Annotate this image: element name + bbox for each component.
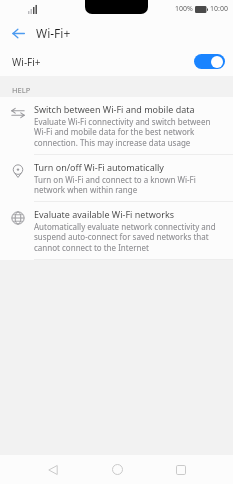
- staticText: Turn on Wi-Fi and connect to a known Wi-…: [34, 174, 223, 196]
- staticText: 100%: [175, 4, 193, 14]
- staticText: Switch between Wi-Fi and mobile data: [34, 103, 195, 115]
- button[interactable]: Wi-Fi+: [0, 47, 233, 76]
- button[interactable]: Turn on/off Wi-Fi automatically: [0, 155, 233, 201]
- staticText: HELP: [12, 85, 31, 95]
- staticText: Evaluate available Wi-Fi networks: [34, 208, 175, 220]
- button[interactable]: Wi-Fi+ toggle on: [194, 54, 225, 69]
- button[interactable]: Recent apps: [162, 455, 200, 484]
- button[interactable]: Back: [34, 455, 72, 484]
- staticText: Automatically evaluate network connectiv…: [34, 221, 223, 254]
- staticText: Wi-Fi+: [12, 55, 41, 69]
- button[interactable]: Switch between Wi-Fi and mobile data: [0, 97, 233, 154]
- staticText: 10:00: [210, 4, 228, 14]
- button[interactable]: Evaluate available Wi-Fi networks: [0, 202, 233, 259]
- button[interactable]: Home: [98, 455, 136, 484]
- staticText: Wi-Fi+: [36, 25, 71, 41]
- staticText: Evaluate Wi-Fi connectivity and switch b…: [34, 116, 223, 149]
- staticText: Turn on/off Wi-Fi automatically: [34, 161, 164, 173]
- button[interactable]: Back: [6, 21, 30, 45]
